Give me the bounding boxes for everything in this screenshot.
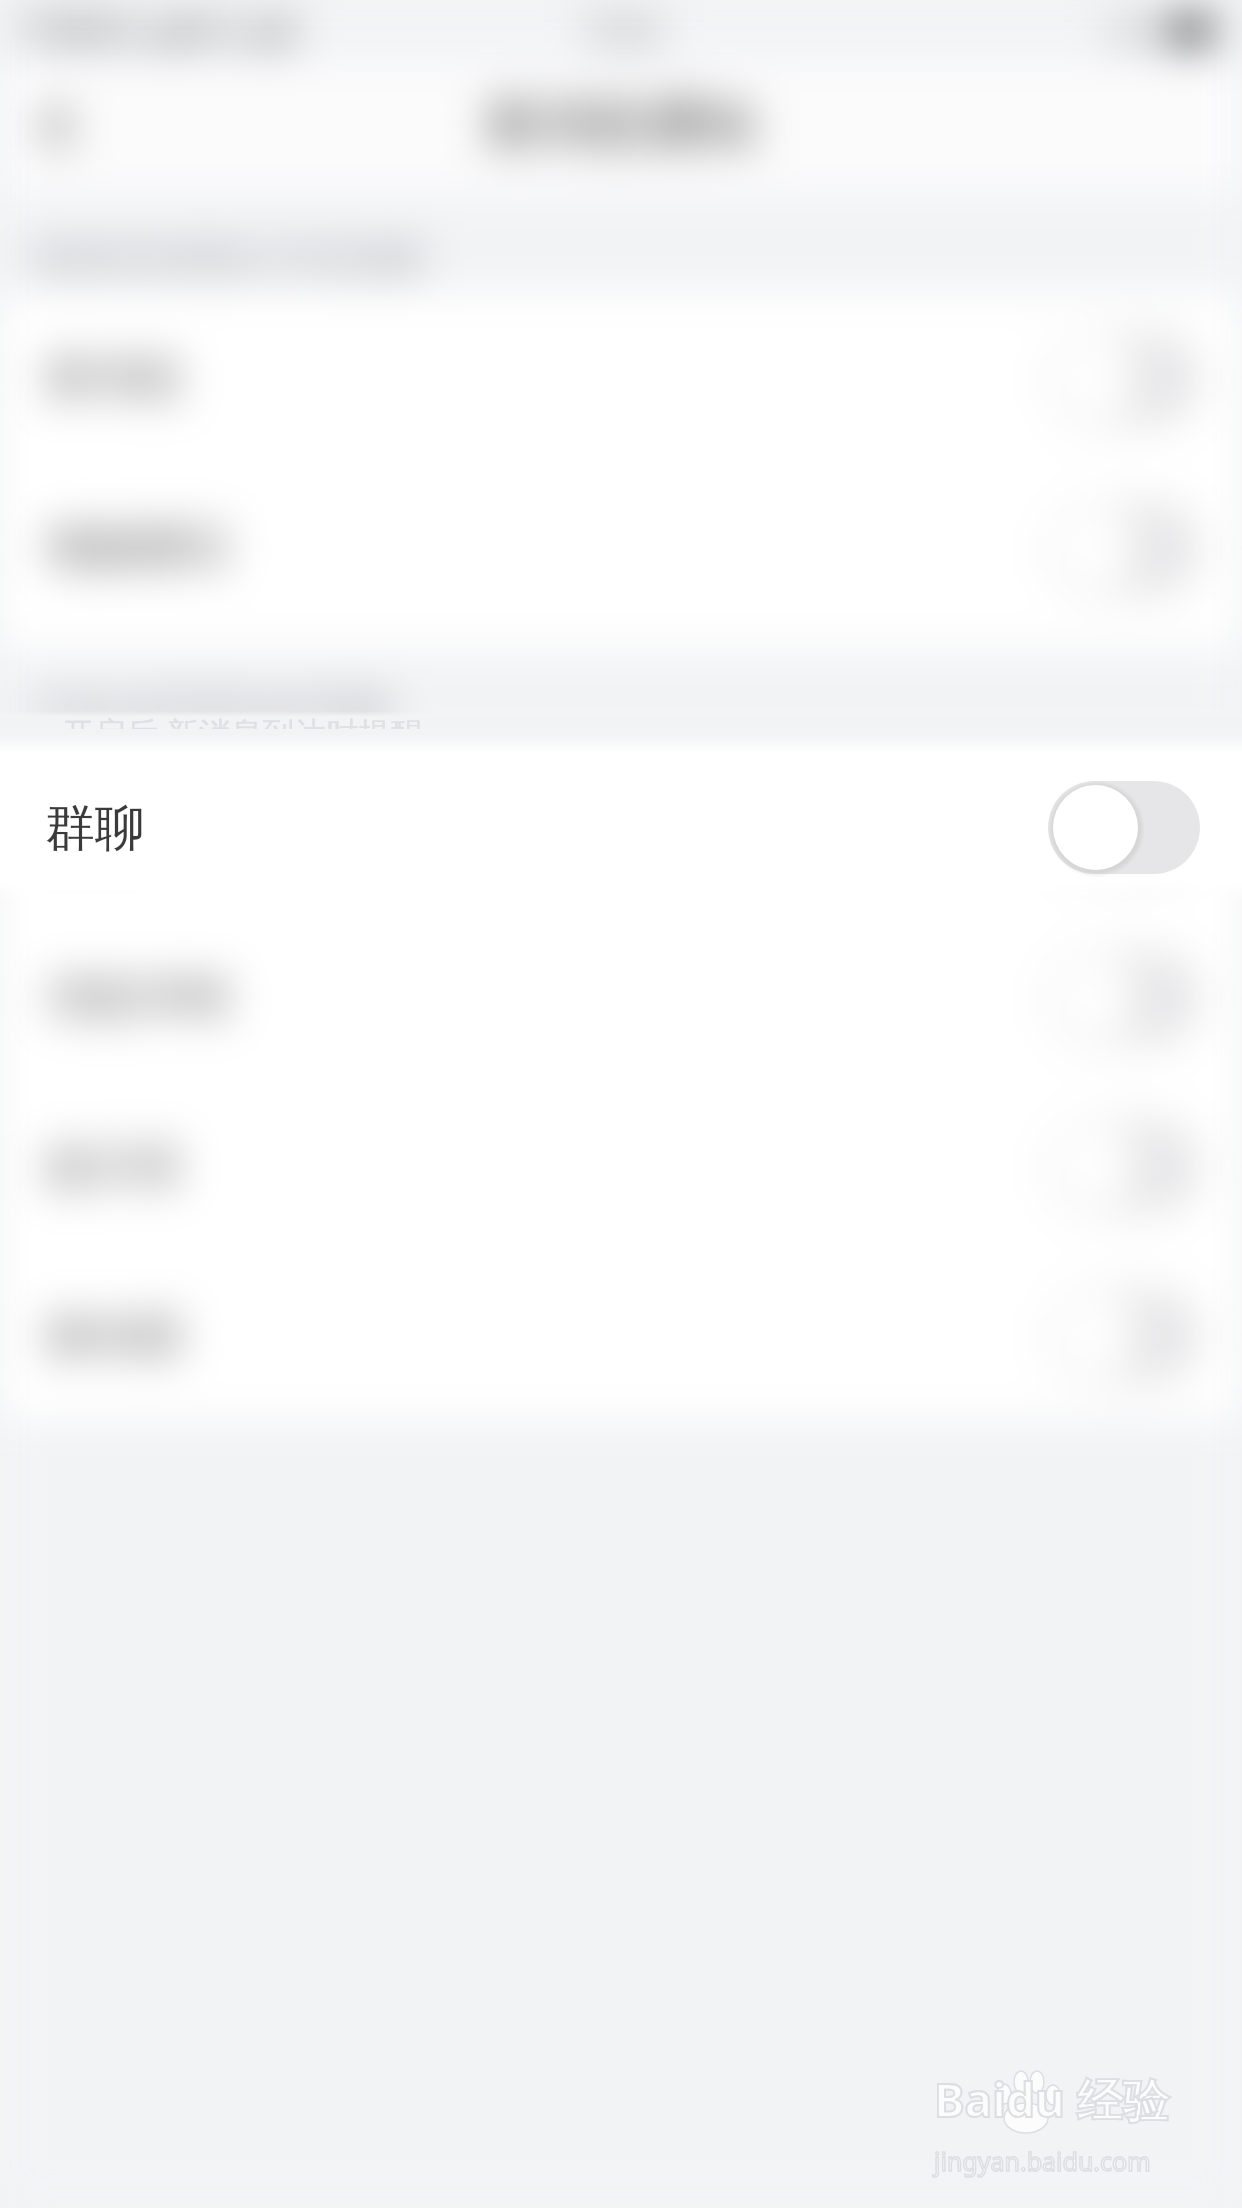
staticText: 群聊 [45,797,145,860]
button[interactable]: 群聊 [0,743,1242,912]
staticText: 群聊 [46,800,138,858]
staticText: 86% [1110,13,1162,48]
staticText: 开启后,新消息到达时提醒 [62,711,423,729]
staticText: 新消息 [46,349,184,407]
button[interactable]: 新消息 [0,293,1242,463]
staticText: jingyan.baidu.com [934,2144,1151,2178]
button[interactable]: 新消息开关 [1048,332,1200,425]
button[interactable]: 群聊开关 [1048,782,1200,875]
staticText: 新消息通知 [486,90,756,158]
button[interactable]: 消息详情 [0,913,1242,1082]
staticText: 视频通话 [46,519,230,577]
staticText: Baidu 经验 [934,2068,1169,2131]
staticText: 中国移动 [20,12,140,50]
staticText: 消息详情 [46,969,230,1027]
button[interactable]: 振动器 [0,1251,1242,1420]
staticText: Baidu 经验 [934,2068,1169,2131]
button[interactable]: 视频通话 [0,463,1242,633]
staticText: 振动器 [46,1307,184,1365]
button[interactable]: 视频通话开关 [1048,502,1200,595]
staticText: 开启后,新消息到达时提醒 [32,686,393,730]
staticText: jingyan.baidu.com [934,2144,1151,2178]
button[interactable]: 提示音开关 [1048,1120,1200,1213]
button[interactable]: 提示音 [0,1082,1242,1251]
button[interactable]: 振动器开关 [1048,1289,1200,1382]
button[interactable]: 群聊消息通知开关,已关闭 [1048,781,1200,874]
button[interactable]: 群聊 [0,744,1242,913]
button[interactable]: 返回 [0,68,118,186]
button[interactable]: 消息详情开关 [1048,951,1200,1044]
staticText: 提示音 [46,1138,184,1196]
